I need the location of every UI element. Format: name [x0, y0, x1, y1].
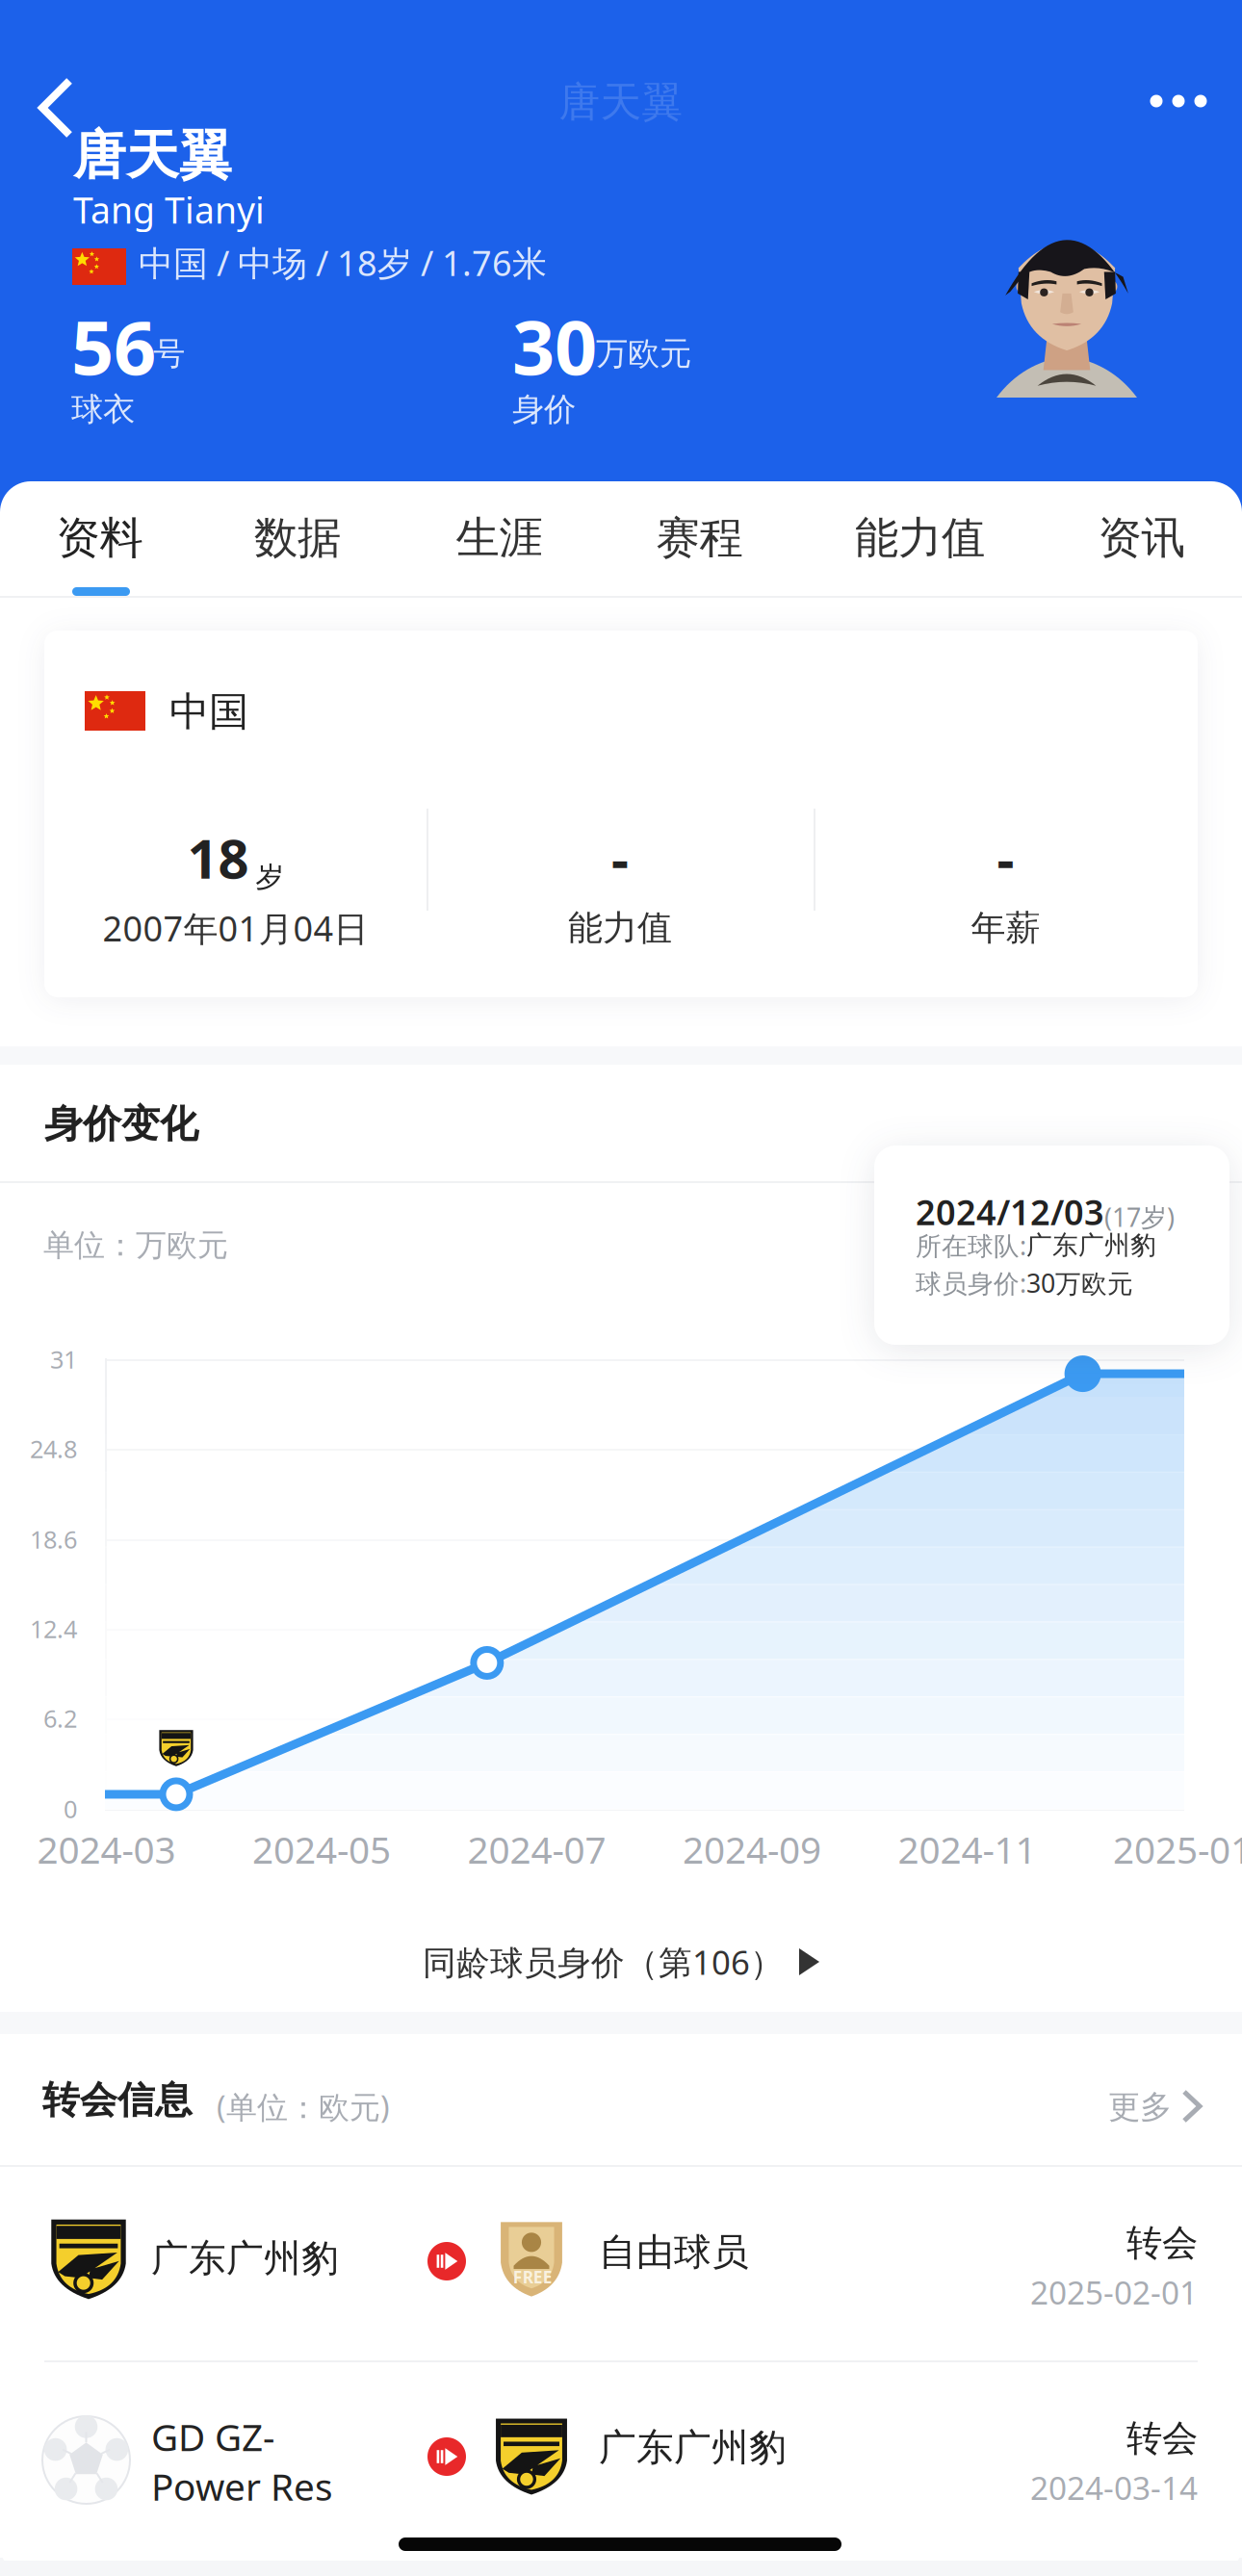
staticText: FREE — [513, 2266, 552, 2288]
staticText: 2007年01月04日 — [103, 905, 368, 951]
staticText: 18.6 — [30, 1523, 77, 1555]
staticText: 所在球队: — [916, 1228, 1026, 1262]
staticText: 赛程 — [656, 511, 743, 565]
staticText: 56 — [71, 296, 156, 395]
staticText: 24.8 — [30, 1433, 77, 1465]
staticText: 球衣 — [71, 390, 135, 429]
staticText: 2025-01 — [1113, 1824, 1242, 1874]
staticText: 资料 — [56, 511, 143, 565]
button[interactable]: 赛程 — [603, 494, 796, 582]
staticText: 广东广州豹 — [599, 2425, 787, 2471]
staticText: 年薪 — [971, 907, 1040, 949]
staticText: 球员身价: — [916, 1266, 1026, 1300]
staticText: 同龄球员身价（第106） — [423, 1940, 784, 1984]
staticText: 数据 — [254, 511, 341, 565]
staticText: 能力值 — [855, 511, 985, 565]
staticText: 岁 — [256, 860, 284, 894]
staticText: 唐天翼 — [73, 123, 232, 188]
staticText: 单位：万欧元 — [43, 1226, 228, 1264]
staticText: 唐天翼 — [559, 77, 683, 127]
staticText: 中国 / 中场 / 18岁 / 1.76米 — [139, 240, 547, 286]
staticText: 2024-03 — [37, 1824, 176, 1874]
staticText: 身价变化 — [44, 1100, 198, 1148]
staticText: 12.4 — [30, 1613, 77, 1645]
button[interactable]: GD GZ- Power Res — [0, 2362, 1242, 2558]
staticText: (单位：欧元) — [217, 2086, 390, 2127]
button[interactable]: 返回 — [23, 60, 119, 156]
button[interactable]: 生涯 — [403, 494, 595, 582]
staticText: 30万欧元 — [1026, 1266, 1133, 1300]
button[interactable]: 广东广州豹 — [0, 2167, 1242, 2362]
staticText: 2024-05 — [252, 1824, 391, 1874]
staticText: 自由球员 — [599, 2229, 749, 2275]
staticText: 资讯 — [1098, 511, 1185, 565]
staticText: 号 — [153, 334, 185, 373]
button[interactable]: 同龄球员身价（第106） — [0, 1909, 1242, 2015]
staticText: 转会 — [1126, 2221, 1198, 2265]
staticText: 30 — [512, 296, 597, 395]
button[interactable]: 转会信息 — [0, 2034, 1242, 2165]
staticText: (17岁) — [1104, 1200, 1175, 1234]
button[interactable]: 能力值 — [824, 494, 1016, 582]
staticText: 转会 — [1126, 2416, 1198, 2460]
staticText: 生涯 — [456, 511, 543, 565]
staticText: 6.2 — [43, 1702, 77, 1734]
staticText: 能力值 — [568, 907, 672, 949]
staticText: 2024-11 — [898, 1824, 1036, 1874]
staticText: 广东广州豹 — [151, 2236, 339, 2281]
staticText: 中国 — [169, 687, 248, 736]
staticText: Tang Tianyi — [73, 186, 265, 234]
button[interactable]: 资讯 — [1045, 494, 1238, 582]
staticText: 31 — [50, 1343, 77, 1375]
staticText: 广东广州豹 — [1026, 1230, 1156, 1261]
staticText: - — [997, 822, 1014, 894]
staticText: 18 — [187, 822, 249, 894]
staticText: 0 — [64, 1793, 77, 1825]
button[interactable]: 数据 — [201, 494, 394, 582]
staticText: 转会信息 — [42, 2077, 193, 2123]
staticText: 身价 — [512, 390, 576, 429]
staticText: GD GZ- Power Res — [151, 2412, 333, 2511]
staticText: 2024-07 — [467, 1824, 606, 1874]
staticText: 2024/12/03 — [916, 1189, 1104, 1235]
staticText: 更多 — [1108, 2087, 1172, 2127]
staticText: 2024-03-14 — [1030, 2466, 1198, 2509]
staticText: 万欧元 — [596, 334, 691, 373]
button[interactable]: 资料 — [3, 494, 196, 582]
staticText: - — [611, 822, 629, 894]
staticText: 2024-09 — [683, 1824, 821, 1874]
staticText: 2025-02-01 — [1030, 2271, 1198, 2313]
button[interactable]: 更多 — [1121, 53, 1236, 149]
